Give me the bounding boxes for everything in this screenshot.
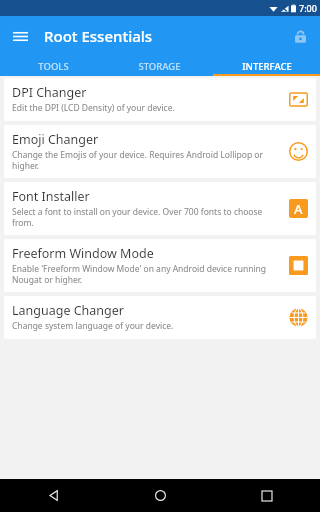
staticText: Enable 'Freeform Window Mode' on any And… [12, 263, 281, 285]
staticText: Emoji Changer [12, 131, 99, 148]
button[interactable]: Back [36, 479, 70, 512]
button[interactable]: Recent apps [250, 479, 284, 512]
button[interactable]: TOOLS [0, 56, 106, 76]
button[interactable]: Home [143, 479, 177, 512]
button[interactable]: Emoji Changer [4, 125, 316, 178]
staticText: STORAGE [138, 60, 181, 73]
staticText: Change the Emojis of your device. Requir… [12, 149, 281, 171]
staticText: DPI Changer [12, 84, 87, 101]
button[interactable]: Language Changer [4, 296, 316, 339]
button[interactable]: Freeform Window Mode [4, 239, 316, 292]
staticText: Change system language of your device. [12, 320, 174, 332]
button[interactable]: Lock [280, 16, 320, 56]
button[interactable]: INTERFACE [213, 56, 320, 76]
staticText: TOOLS [38, 60, 69, 73]
staticText: Font Installer [12, 188, 90, 205]
staticText: Language Changer [12, 302, 124, 319]
staticText: 7:00 [299, 2, 317, 14]
staticText: Select a font to install on your device.… [12, 206, 281, 228]
button[interactable]: STORAGE [106, 56, 213, 76]
staticText: Freeform Window Mode [12, 245, 154, 262]
staticText: Edit the DPI (LCD Density) of your devic… [12, 102, 175, 114]
button[interactable]: DPI Changer [4, 78, 316, 121]
staticText: INTERFACE [242, 60, 292, 73]
button[interactable]: Font Installer [4, 182, 316, 235]
staticText: A [294, 200, 303, 218]
staticText: Root Essentials [44, 26, 153, 46]
button[interactable]: Open navigation drawer [0, 16, 40, 56]
